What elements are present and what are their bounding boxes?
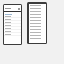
button[interactable]: [4, 15, 21, 18]
button[interactable]: [4, 13, 21, 15]
button[interactable]: [4, 18, 21, 21]
button[interactable]: [4, 21, 21, 24]
button[interactable]: [4, 30, 21, 33]
button[interactable]: [4, 33, 21, 36]
button[interactable]: [4, 24, 21, 27]
button[interactable]: [4, 27, 21, 30]
